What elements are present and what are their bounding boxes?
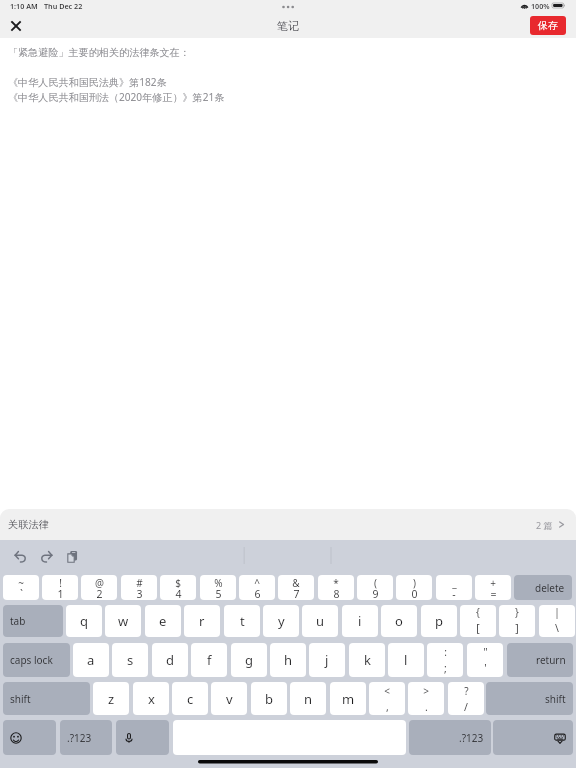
button[interactable]: v	[211, 682, 247, 715]
button[interactable]: shift	[486, 682, 573, 715]
button[interactable]: )	[396, 575, 432, 600]
button[interactable]: |	[539, 605, 575, 637]
staticText: 5	[215, 587, 222, 600]
staticText: Thu Dec 22	[44, 1, 83, 11]
staticText: +	[490, 576, 496, 590]
button[interactable]: +	[475, 575, 511, 600]
button[interactable]: ^	[239, 575, 275, 600]
staticText: caps lock	[10, 653, 53, 667]
staticText: [	[476, 621, 480, 635]
button[interactable]: f	[191, 643, 227, 677]
button[interactable]: ~	[3, 575, 39, 600]
button[interactable]: k	[349, 643, 385, 677]
staticText: z	[108, 690, 115, 708]
button[interactable]: @	[81, 575, 117, 600]
button[interactable]: y	[263, 605, 299, 637]
staticText: /	[464, 700, 468, 714]
button[interactable]: *	[318, 575, 354, 600]
button[interactable]: z	[93, 682, 129, 715]
staticText: b	[265, 690, 273, 708]
button[interactable]: Redo	[37, 547, 55, 565]
button[interactable]: Hide keyboard	[493, 720, 573, 755]
staticText: -	[452, 587, 456, 600]
staticText: .?123	[67, 731, 92, 745]
staticText: <	[384, 684, 390, 698]
button[interactable]: %	[200, 575, 236, 600]
button[interactable]: m	[330, 682, 366, 715]
button[interactable]: x	[133, 682, 169, 715]
button[interactable]: n	[290, 682, 326, 715]
button[interactable]: w	[105, 605, 141, 637]
button[interactable]: {	[460, 605, 496, 637]
button[interactable]: caps lock	[3, 643, 70, 677]
staticText: j	[325, 651, 329, 669]
button[interactable]: l	[388, 643, 424, 677]
button[interactable]: p	[421, 605, 457, 637]
staticText: q	[80, 612, 88, 630]
staticText: tab	[10, 614, 26, 628]
staticText: k	[364, 651, 371, 669]
staticText: 保存	[538, 19, 558, 32]
button[interactable]: delete	[514, 575, 572, 600]
button[interactable]: b	[251, 682, 287, 715]
button[interactable]: "	[467, 643, 503, 677]
button[interactable]: _	[436, 575, 472, 600]
button[interactable]: q	[66, 605, 102, 637]
staticText: x	[148, 690, 155, 708]
button[interactable]: .?123	[409, 720, 491, 755]
staticText: ]	[515, 621, 519, 635]
button[interactable]: d	[152, 643, 188, 677]
button[interactable]: Emoji	[3, 720, 56, 755]
button[interactable]: u	[302, 605, 338, 637]
staticText: #	[136, 576, 143, 590]
button[interactable]: &	[278, 575, 314, 600]
staticText: delete	[535, 581, 565, 595]
button[interactable]: :	[427, 643, 463, 677]
button[interactable]: ?	[448, 682, 484, 715]
staticText: &	[292, 576, 300, 590]
button[interactable]: s	[112, 643, 148, 677]
staticText: {	[476, 605, 480, 619]
button[interactable]: i	[342, 605, 378, 637]
button[interactable]: h	[270, 643, 306, 677]
staticText: i	[358, 612, 362, 630]
staticText: %	[214, 576, 223, 590]
button[interactable]: 保存	[530, 16, 566, 35]
button[interactable]: 关联法律	[0, 509, 576, 540]
button[interactable]: Paste	[63, 547, 81, 565]
button[interactable]: o	[381, 605, 417, 637]
button[interactable]: #	[121, 575, 157, 600]
button[interactable]: >	[408, 682, 444, 715]
button[interactable]: .?123	[60, 720, 112, 755]
staticText: w	[118, 612, 129, 630]
button[interactable]: a	[73, 643, 109, 677]
button[interactable]: Undo	[11, 547, 29, 565]
button[interactable]: return	[507, 643, 573, 677]
staticText: :	[444, 645, 447, 659]
button[interactable]: (	[357, 575, 393, 600]
button[interactable]: shift	[3, 682, 90, 715]
staticText: r	[199, 612, 205, 630]
button[interactable]: Dictation	[116, 720, 169, 755]
button[interactable]: e	[145, 605, 181, 637]
staticText: ;	[444, 661, 447, 675]
staticText: c	[187, 690, 194, 708]
button[interactable]: t	[224, 605, 260, 637]
button[interactable]: $	[160, 575, 196, 600]
staticText: ^	[254, 576, 260, 590]
button[interactable]: <	[369, 682, 405, 715]
button[interactable]: Close	[5, 15, 27, 37]
staticText: 4	[175, 587, 182, 600]
button[interactable]: }	[499, 605, 535, 637]
button[interactable]: r	[184, 605, 220, 637]
button[interactable]: j	[309, 643, 345, 677]
button[interactable]: tab	[3, 605, 63, 637]
staticText: 「紧急避险」主要的相关的法律条文在：	[8, 46, 190, 59]
staticText: @	[95, 576, 104, 590]
button[interactable]: c	[172, 682, 208, 715]
button[interactable]: !	[42, 575, 78, 600]
staticText: |	[554, 605, 560, 619]
staticText: m	[342, 690, 355, 708]
button[interactable]: g	[231, 643, 267, 677]
